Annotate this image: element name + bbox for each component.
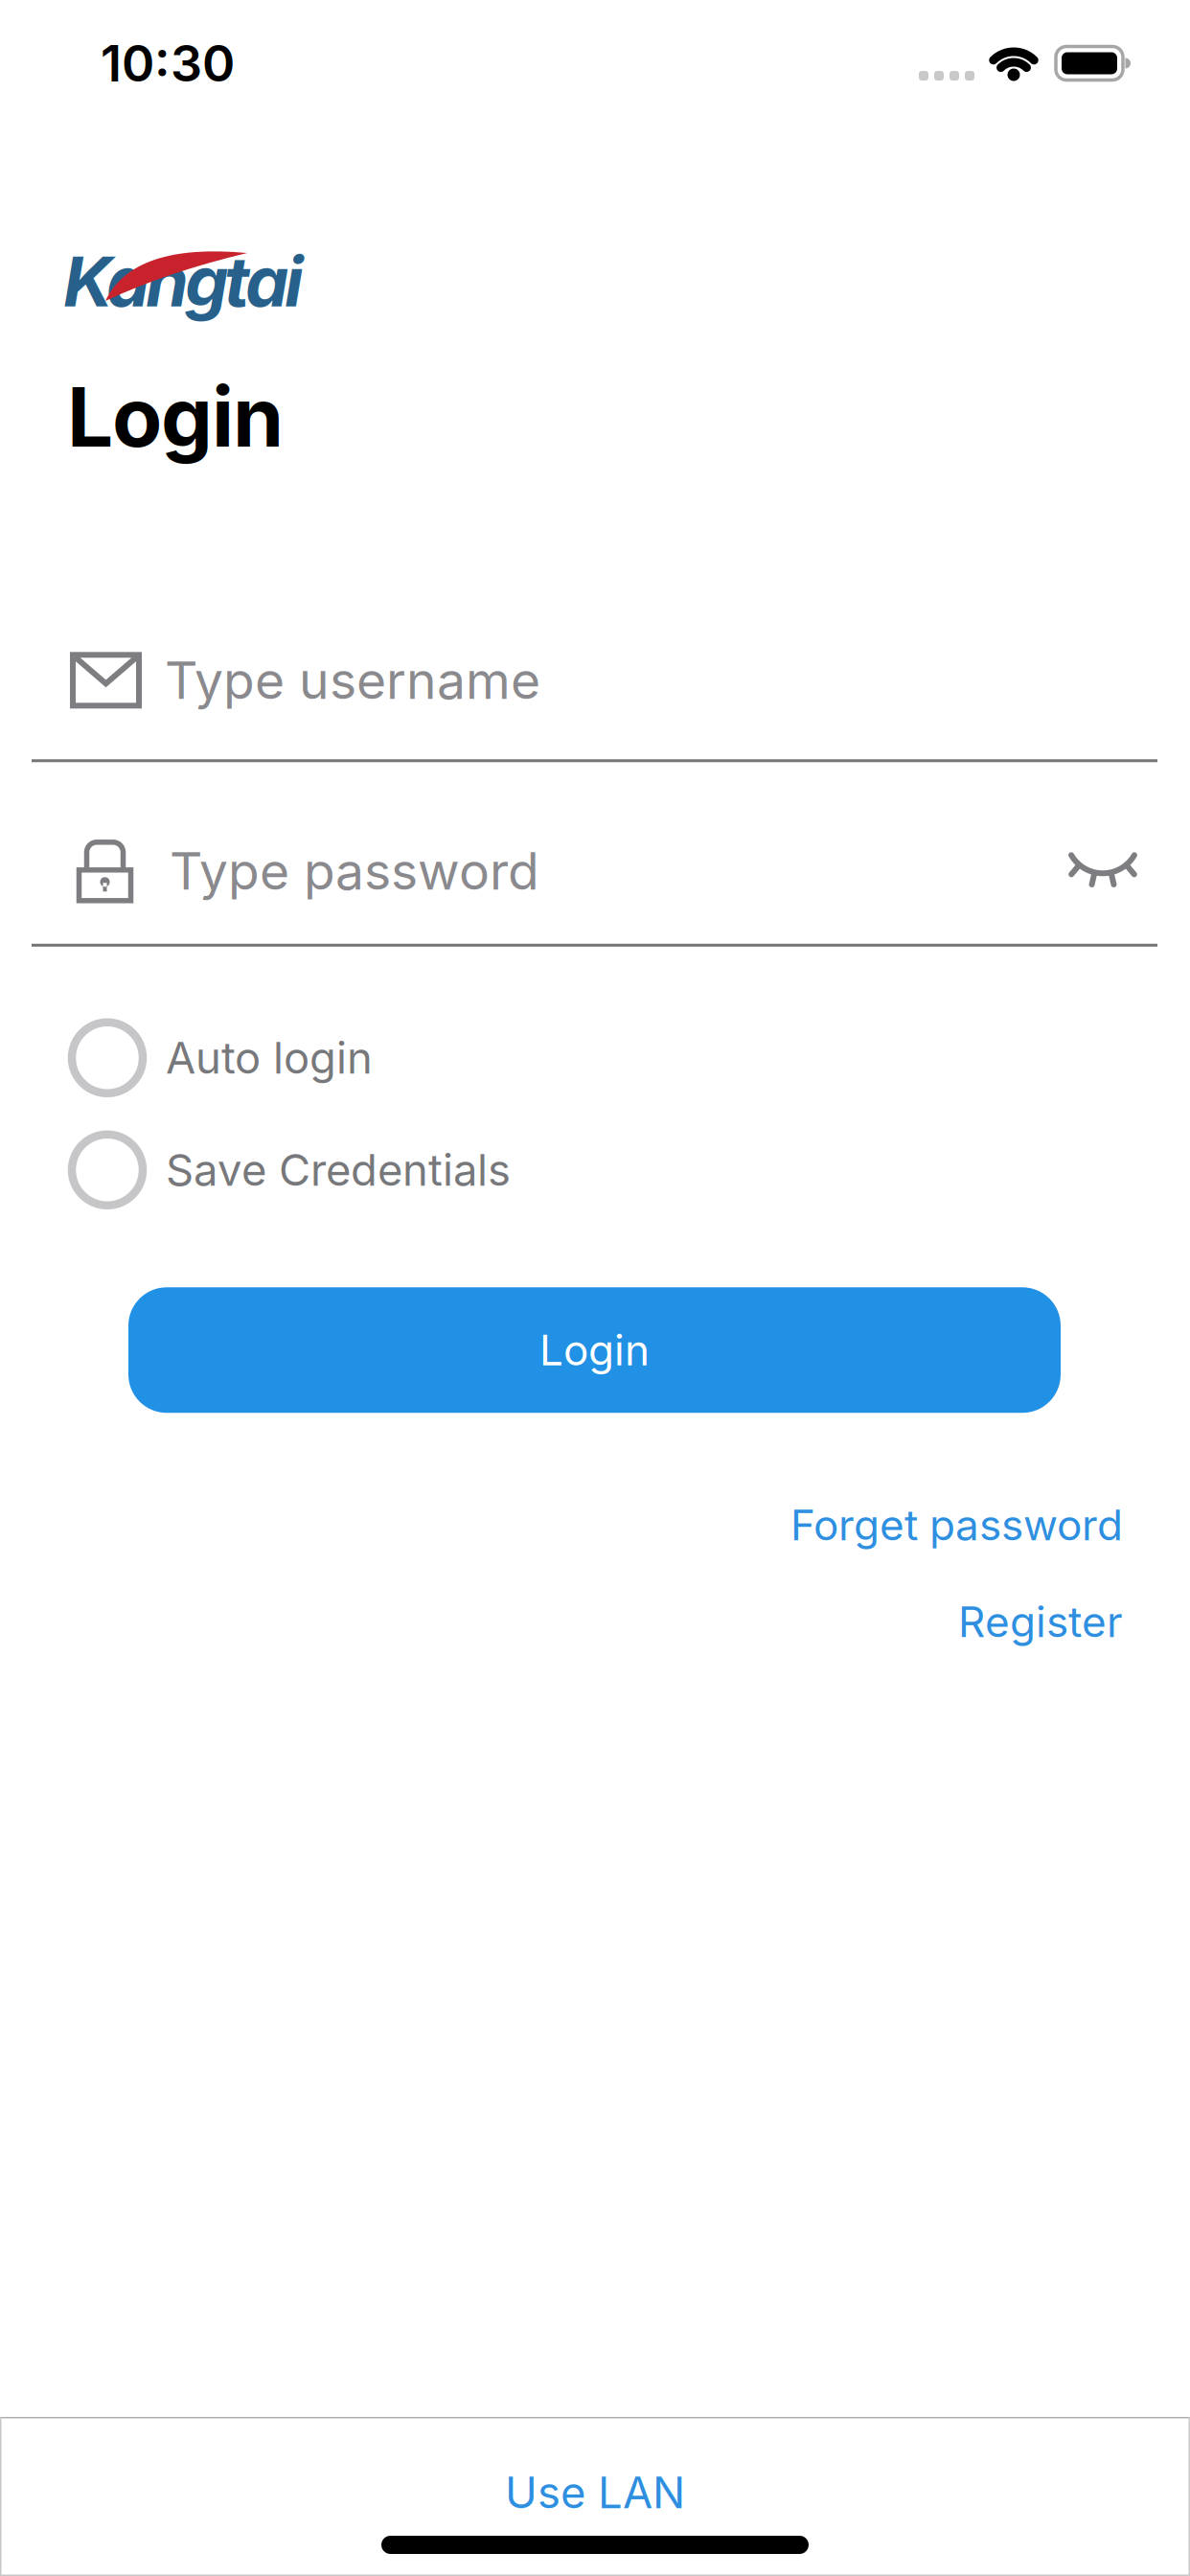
button[interactable]: Type username	[0, 650, 1190, 762]
staticText: Use LAN	[505, 2467, 685, 2518]
button[interactable]: Type password	[0, 839, 1190, 947]
staticText: Forget password	[790, 1500, 1123, 1550]
staticText: Login	[539, 1325, 650, 1375]
button[interactable]: Save Credentials	[0, 1134, 511, 1205]
button[interactable]: Use LAN	[505, 2417, 685, 2518]
staticText: Type password	[170, 841, 539, 901]
staticText: Login	[67, 369, 284, 465]
staticText: Type username	[165, 650, 540, 710]
button[interactable]: Show password	[1071, 849, 1134, 892]
button[interactable]: Register	[958, 1597, 1123, 1647]
button[interactable]: Login	[128, 1287, 1061, 1413]
staticText: Auto login	[166, 1032, 373, 1083]
staticText: Kangtai	[63, 241, 304, 322]
staticText: Save Credentials	[166, 1144, 511, 1196]
staticText: Register	[958, 1597, 1123, 1647]
button[interactable]: Auto login	[0, 1022, 373, 1093]
staticText: 10:30	[101, 34, 235, 93]
button[interactable]: Forget password	[790, 1500, 1123, 1550]
